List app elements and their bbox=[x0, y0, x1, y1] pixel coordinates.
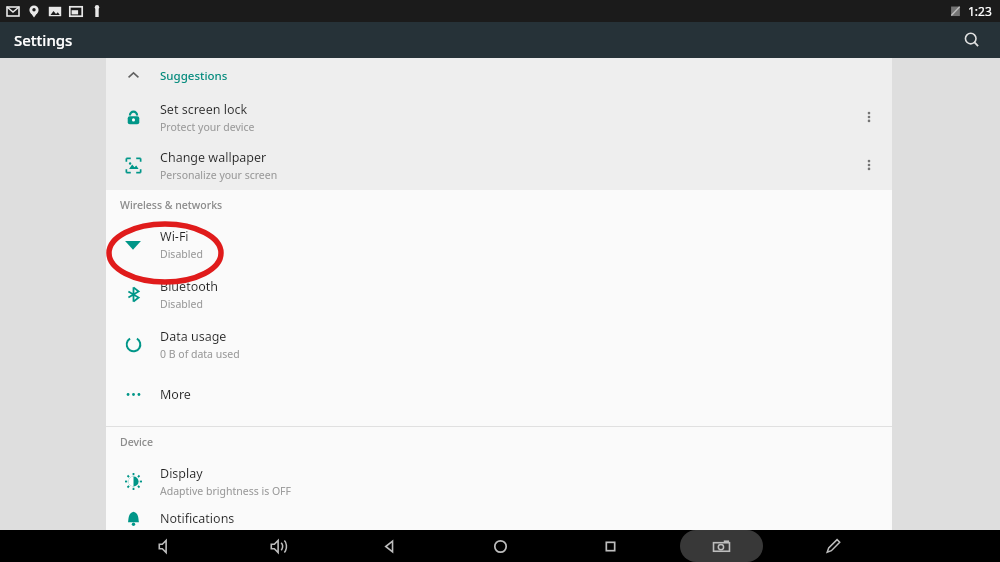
button[interactable]: Recents bbox=[591, 530, 629, 562]
button[interactable]: More options bbox=[846, 141, 892, 189]
staticText: Change wallpaper bbox=[160, 149, 267, 166]
button[interactable]: Collapse suggestions bbox=[106, 58, 892, 93]
staticText: Adaptive brightness is OFF bbox=[160, 484, 292, 498]
button[interactable]: Search bbox=[956, 24, 988, 56]
staticText: Device bbox=[120, 435, 154, 449]
button[interactable]: Home bbox=[481, 530, 519, 562]
button[interactable]: Change wallpaper bbox=[106, 141, 892, 189]
button[interactable]: Wi-Fi bbox=[106, 219, 892, 269]
button[interactable]: Volume up bbox=[259, 530, 297, 562]
other: Collapse suggestions bbox=[106, 58, 160, 93]
staticText: 0 B of data used bbox=[160, 347, 240, 361]
staticText: 1:23 bbox=[968, 3, 992, 19]
button[interactable]: Display bbox=[106, 456, 892, 506]
button[interactable]: More bbox=[106, 369, 892, 419]
staticText: Protect your device bbox=[160, 120, 255, 134]
staticText: Bluetooth bbox=[160, 278, 219, 295]
button[interactable]: Set screen lock bbox=[106, 93, 892, 141]
staticText: Suggestions bbox=[160, 68, 228, 84]
button[interactable]: Volume down bbox=[147, 530, 185, 562]
button[interactable]: Camera bbox=[680, 530, 763, 562]
staticText: Wi-Fi bbox=[160, 228, 189, 245]
staticText: Set screen lock bbox=[160, 101, 248, 118]
staticText: Display bbox=[160, 465, 203, 482]
staticText: Data usage bbox=[160, 328, 227, 345]
staticText: More bbox=[160, 386, 191, 403]
staticText: Disabled bbox=[160, 247, 203, 261]
button[interactable]: More options bbox=[846, 93, 892, 141]
button[interactable]: Notifications bbox=[106, 506, 892, 530]
button[interactable]: Stylus bbox=[813, 530, 851, 562]
staticText: Settings bbox=[14, 30, 73, 50]
staticText: Wireless & networks bbox=[120, 198, 223, 212]
button[interactable]: Back bbox=[370, 530, 408, 562]
button[interactable]: Data usage bbox=[106, 319, 892, 369]
staticText: Notifications bbox=[160, 510, 235, 527]
button[interactable]: Bluetooth bbox=[106, 269, 892, 319]
staticText: Disabled bbox=[160, 297, 203, 311]
staticText: Personalize your screen bbox=[160, 168, 278, 182]
